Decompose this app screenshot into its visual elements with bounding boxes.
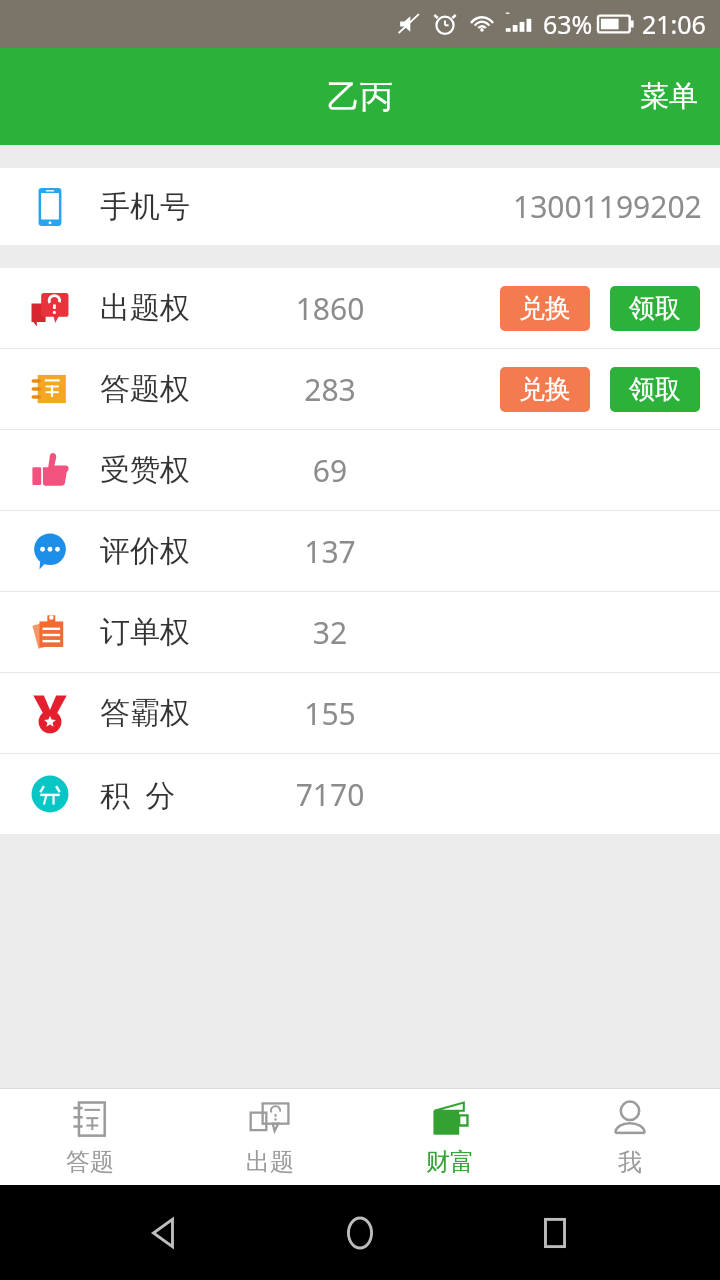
staticText: 兑换 [519,373,571,406]
staticText: 7170 [270,774,390,815]
button[interactable]: 兑换 [500,367,590,412]
button[interactable]: 菜单 [618,58,720,135]
button[interactable]: 领取 [610,367,700,412]
button[interactable]: 答题 [0,1089,180,1185]
staticText: 财富 [426,1147,474,1177]
button[interactable]: Back [135,1203,195,1263]
button[interactable]: 兑换 [500,286,590,331]
staticText: 订单权 [100,613,270,651]
staticText: 137 [270,531,390,572]
staticText: 答题权 [100,370,270,408]
button[interactable]: Recent apps [525,1203,585,1263]
button[interactable]: 财富 [360,1089,540,1185]
staticText: 21:06 [642,7,706,41]
staticText: 出题权 [100,289,270,327]
button[interactable]: 订单权 [0,592,720,672]
button[interactable]: 领取 [610,286,700,331]
staticText: 评价权 [100,532,270,570]
staticText: 63% [543,7,593,41]
staticText: 32 [270,612,390,653]
staticText: 出题 [246,1147,294,1177]
staticText: 13001199202 [513,186,702,227]
staticText: 积 分 [100,774,270,815]
button[interactable]: 出题权 [0,268,720,348]
button[interactable]: 答霸权 [0,673,720,753]
staticText: 手机号 [100,188,190,226]
staticText: 答题 [66,1147,114,1177]
staticText: 菜单 [640,78,698,115]
staticText: 乙丙 [327,76,393,118]
button[interactable]: 受赞权 [0,430,720,510]
button[interactable]: 评价权 [0,511,720,591]
button[interactable]: 答题权 [0,349,720,429]
staticText: 我 [618,1147,642,1177]
staticText: 兑换 [519,292,571,325]
button[interactable]: 手机号 [0,168,720,245]
button[interactable]: 我 [540,1089,720,1185]
staticText: 1860 [270,288,390,329]
staticText: 领取 [629,292,681,325]
staticText: 69 [270,450,390,491]
staticText: 283 [270,369,390,410]
staticText: 答霸权 [100,694,270,732]
staticText: 受赞权 [100,451,270,489]
staticText: 155 [270,693,390,734]
staticText: 领取 [629,373,681,406]
button[interactable]: Home [330,1203,390,1263]
button[interactable]: 出题 [180,1089,360,1185]
button[interactable]: 积 分 [0,754,720,834]
